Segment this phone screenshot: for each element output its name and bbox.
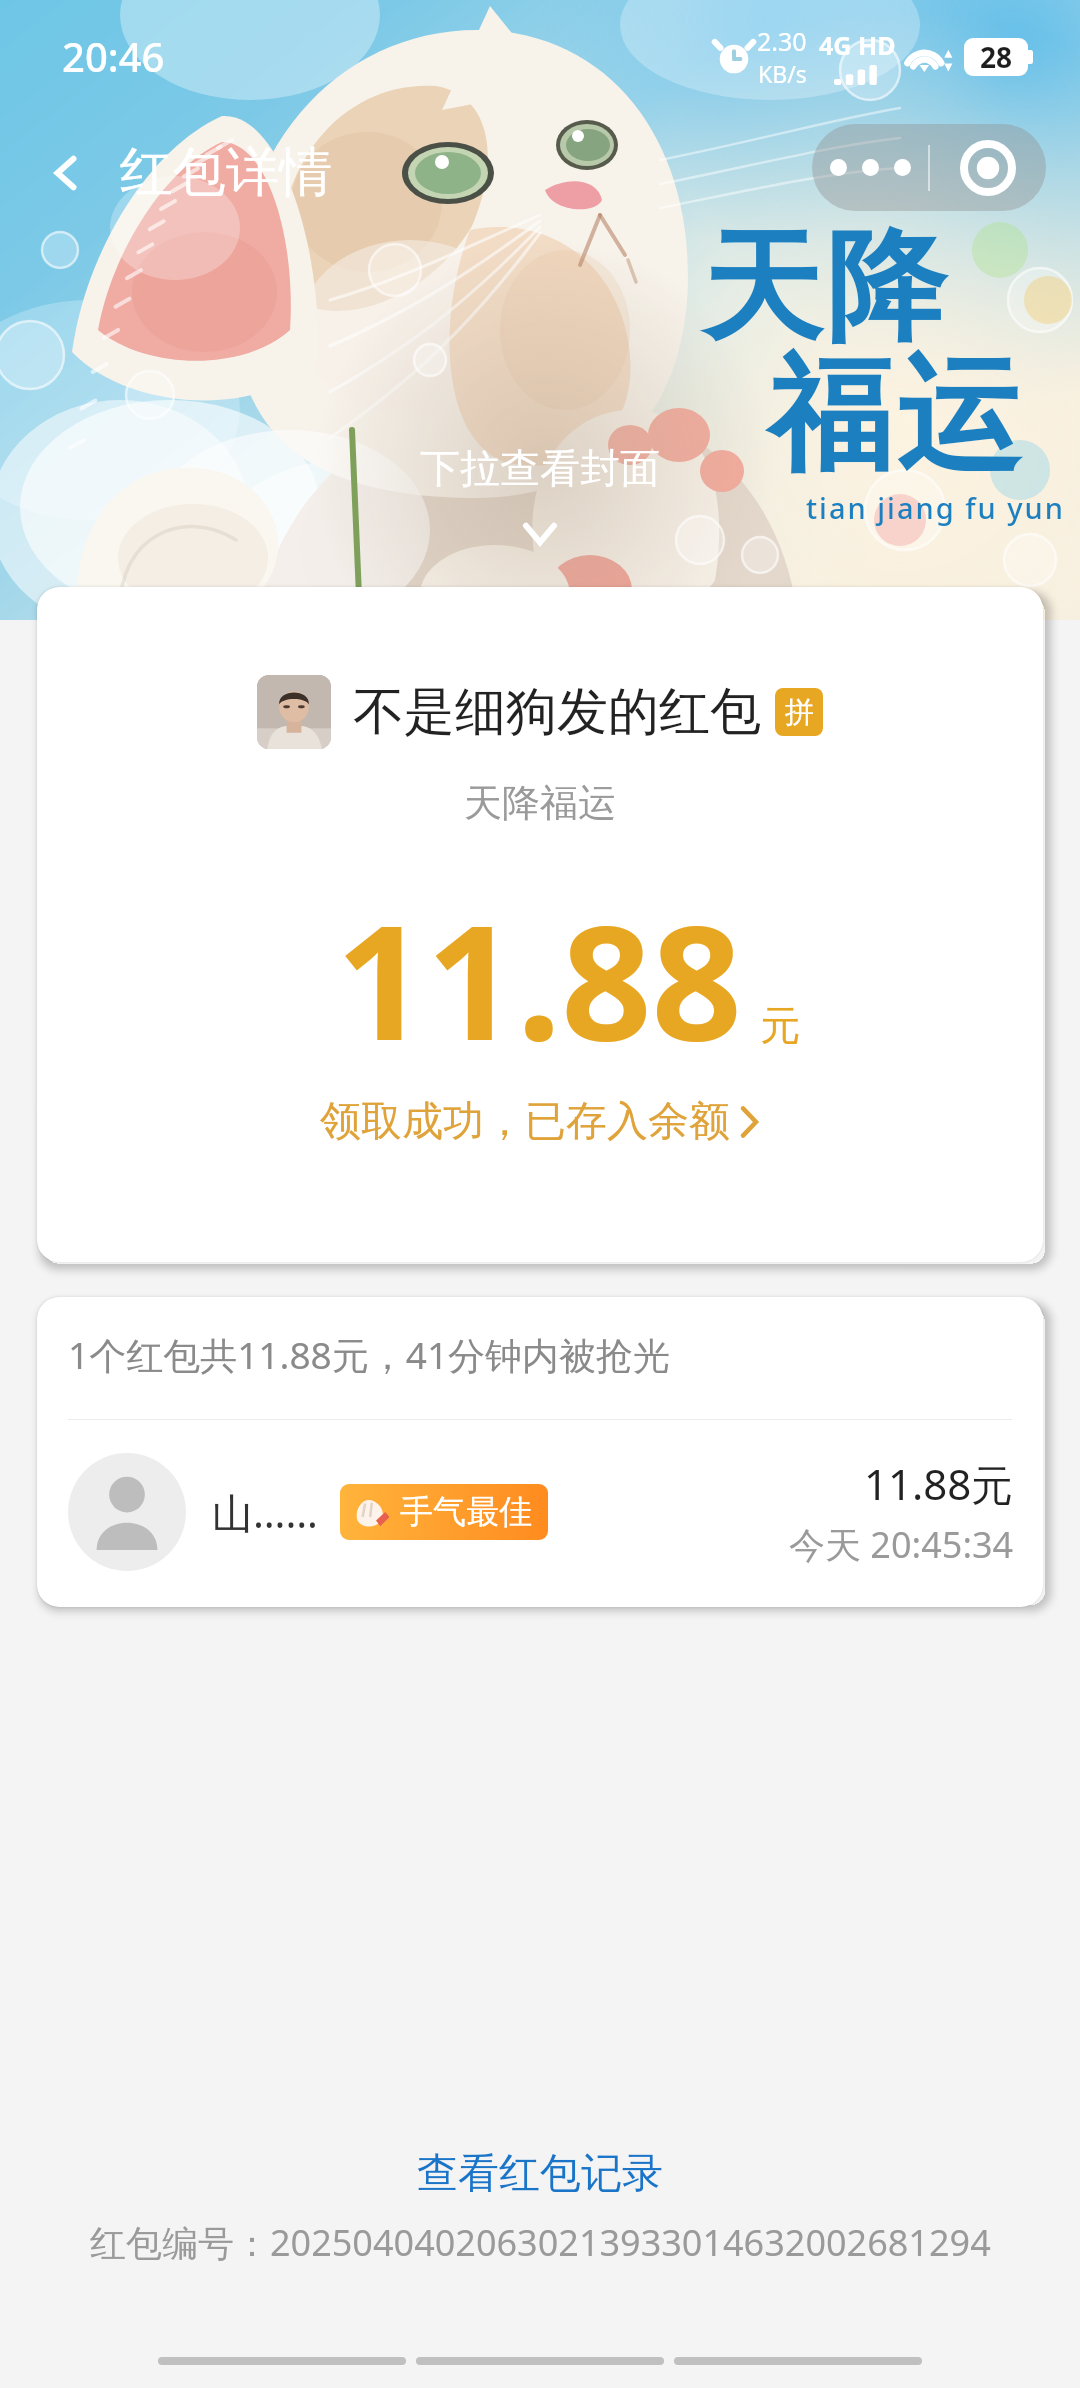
button[interactable]: 查看红包记录	[387, 2142, 693, 2206]
button[interactable]: Close	[930, 124, 1046, 211]
button[interactable]: 领取成功，已存入余额	[320, 1096, 760, 1148]
staticText: 红包编号：20250404020630213933014632002681294	[90, 2218, 991, 2267]
staticText: 今天 20:45:34	[789, 1520, 1014, 1569]
staticText: 2.30	[757, 24, 807, 58]
staticText: 不是细狗发的红包	[353, 680, 761, 744]
staticText: 山……	[212, 1484, 318, 1540]
staticText: 天降福运	[464, 779, 616, 827]
staticText: 查看红包记录	[417, 2148, 663, 2200]
staticText: 4G	[819, 28, 852, 62]
staticText: tian jiang fu yun	[806, 488, 1065, 527]
staticText: 28	[980, 38, 1013, 76]
staticText: 1个红包共11.88元，41分钟内被抢光	[68, 1329, 671, 1380]
staticText: 福运	[766, 338, 1022, 494]
staticText: 11.88元	[864, 1455, 1014, 1512]
staticText: 元	[760, 1000, 800, 1050]
staticText: KB/s	[758, 58, 807, 89]
staticText: 红包详情	[120, 139, 332, 206]
staticText: HD	[858, 28, 896, 62]
staticText: 天降	[700, 212, 948, 363]
staticText: 下拉查看封面	[420, 443, 660, 493]
staticText: 拼	[785, 694, 814, 731]
staticText: 领取成功，已存入余额	[320, 1096, 730, 1148]
button[interactable]: Back	[34, 141, 98, 205]
staticText: 手气最佳	[400, 1491, 532, 1533]
staticText: 11.88	[336, 871, 742, 1086]
button[interactable]: More	[812, 124, 928, 211]
staticText: 20:46	[62, 29, 165, 83]
button[interactable]: 山……	[37, 1420, 1043, 1607]
